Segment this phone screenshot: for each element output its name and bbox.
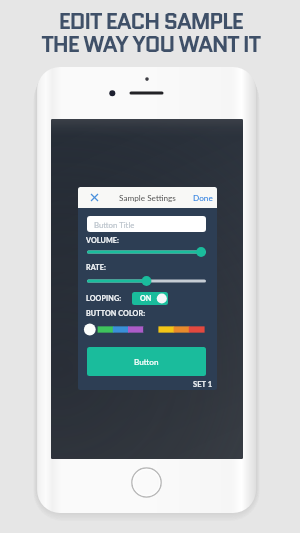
button[interactable]: Close: [86, 187, 102, 208]
staticText: LOOPING:: [86, 294, 122, 303]
staticText: BUTTON COLOR:: [86, 309, 146, 318]
staticText: VOLUME:: [86, 236, 120, 245]
button[interactable]: [87, 247, 206, 257]
button[interactable]: ON: [132, 292, 168, 305]
staticText: ON: [140, 294, 152, 303]
button[interactable]: [87, 323, 206, 336]
button[interactable]: Done: [189, 187, 217, 208]
staticText: Button Title: [94, 220, 135, 229]
staticText: THE WAY YOU WANT IT: [41, 28, 260, 60]
staticText: SET 1: [193, 379, 213, 388]
staticText: Sample Settings: [119, 193, 176, 203]
staticText: Done: [193, 193, 213, 203]
staticText: EDIT EACH SAMPLE: [58, 5, 243, 37]
button[interactable]: [87, 276, 206, 286]
button[interactable]: Button Title: [87, 216, 206, 232]
staticText: Button: [134, 357, 159, 367]
staticText: RATE:: [86, 263, 106, 272]
button[interactable]: Button: [87, 347, 206, 376]
